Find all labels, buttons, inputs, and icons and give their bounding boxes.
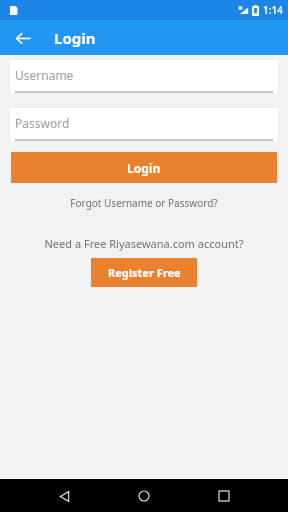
staticText: Need a Free Riyasewana.com account? [0, 236, 288, 251]
button[interactable]: Home [132, 484, 156, 508]
staticText: Username [15, 67, 74, 83]
staticText: Login [127, 160, 161, 176]
button[interactable]: Username [10, 60, 278, 93]
staticText: Register Free [108, 265, 181, 280]
button[interactable]: Recents [212, 484, 236, 508]
staticText: Password [15, 115, 70, 131]
button[interactable]: Back [52, 484, 76, 508]
button[interactable]: Register Free [91, 258, 197, 287]
button[interactable]: Login [11, 152, 277, 183]
button[interactable]: Back [11, 26, 35, 50]
button[interactable]: Password [10, 108, 278, 141]
staticText: Login [54, 28, 96, 48]
staticText: 1:14 [263, 3, 283, 17]
button[interactable]: Forgot Username or Password? [0, 196, 288, 210]
